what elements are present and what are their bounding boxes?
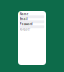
staticText: Email — [20, 17, 28, 21]
staticText: Password — [20, 22, 33, 26]
staticText: Name — [20, 12, 29, 16]
button[interactable]: Forgot? — [20, 28, 30, 31]
staticText: Forgot? — [20, 28, 30, 31]
